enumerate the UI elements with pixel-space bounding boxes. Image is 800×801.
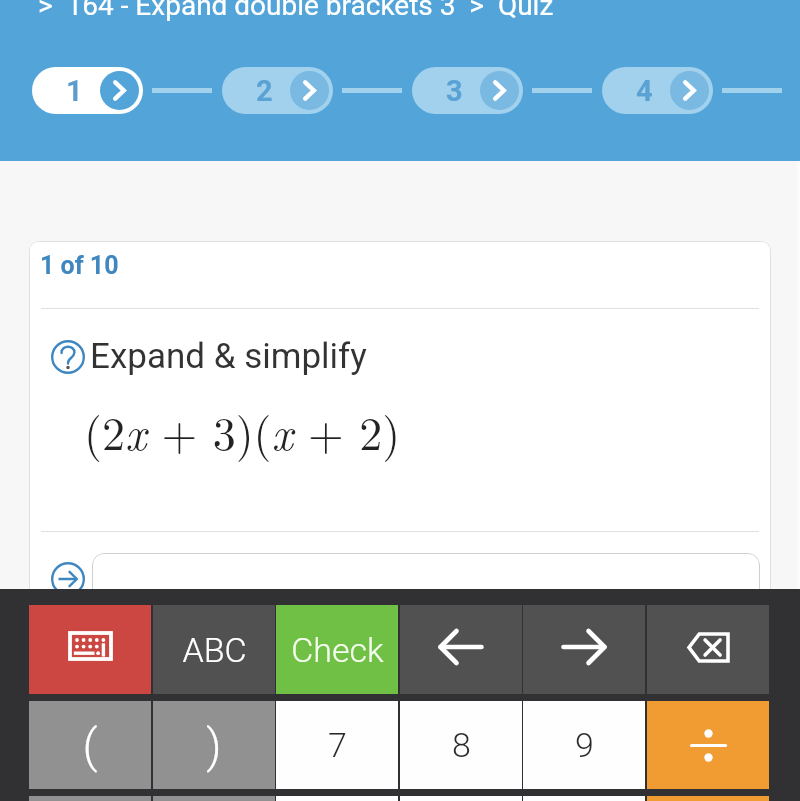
- staticText: 7: [328, 725, 347, 765]
- button[interactable]: Move left: [400, 605, 522, 694]
- button[interactable]: Help: [50, 339, 86, 375]
- staticText: 2: [256, 74, 273, 108]
- other: Help: [50, 339, 86, 375]
- button[interactable]: [647, 701, 769, 789]
- button[interactable]: Check: [276, 605, 398, 694]
- button[interactable]: > 164 - Expand double brackets 3 > Quiz: [38, 0, 554, 22]
- button[interactable]: ABC: [153, 605, 275, 694]
- other: Submit answer: [50, 561, 86, 597]
- button[interactable]: Keyboard: [29, 605, 151, 694]
- button[interactable]: (: [29, 701, 151, 789]
- staticText: 8: [452, 725, 471, 765]
- staticText: 1 of 10: [40, 251, 119, 280]
- staticText: (2x + 3)(x + 2): [84, 398, 401, 463]
- button[interactable]: ): [153, 701, 275, 789]
- button[interactable]: 3: [412, 67, 523, 114]
- staticText: ABC: [182, 630, 247, 670]
- button[interactable]: 9: [523, 701, 645, 789]
- button[interactable]: [92, 553, 760, 611]
- button[interactable]: 1: [32, 67, 143, 114]
- button[interactable]: 4: [602, 67, 713, 114]
- button[interactable]: Submit answer: [50, 561, 86, 597]
- staticText: 9: [575, 725, 594, 765]
- button[interactable]: 2: [222, 67, 333, 114]
- staticText: Expand & simplify: [90, 336, 367, 377]
- staticText: 4: [636, 74, 653, 108]
- button[interactable]: Backspace: [647, 605, 769, 694]
- staticText: 1: [66, 74, 83, 108]
- button[interactable]: 8: [400, 701, 522, 789]
- staticText: (: [82, 718, 98, 773]
- button[interactable]: 7: [276, 701, 398, 789]
- staticText: 3: [446, 74, 463, 108]
- button[interactable]: Move right: [523, 605, 645, 694]
- staticText: Check: [291, 630, 384, 670]
- staticText: ): [206, 718, 222, 773]
